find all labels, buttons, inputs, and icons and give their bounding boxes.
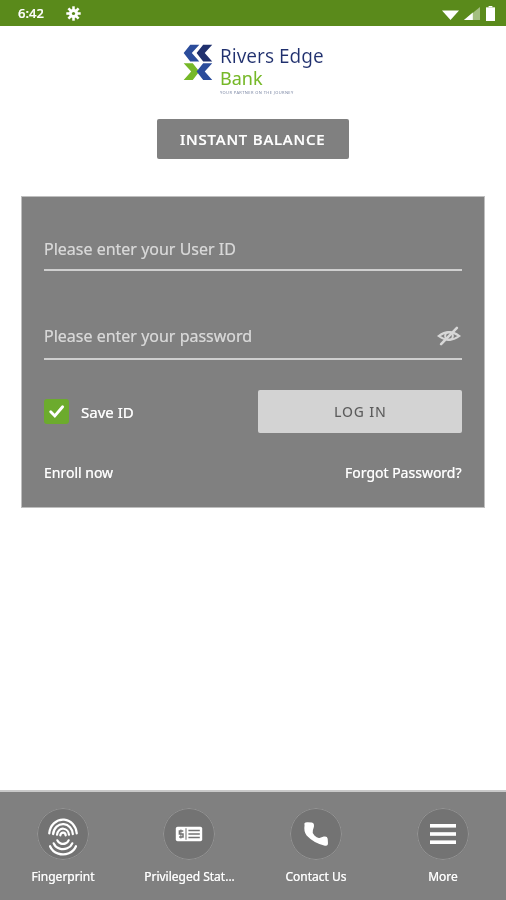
staticText: Fingerprint: [31, 868, 95, 884]
staticText: Please enter your password: [44, 325, 253, 347]
staticText: Privileged Stat...: [144, 868, 235, 884]
button[interactable]: Save ID: [44, 399, 134, 424]
button[interactable]: Please enter your User ID: [44, 238, 462, 271]
button[interactable]: Fingerprint: [0, 802, 126, 890]
staticText: Rivers Edge: [220, 43, 324, 69]
staticText: 6:42: [18, 4, 44, 22]
button[interactable]: Privileged Stat...: [126, 802, 252, 890]
staticText: Forgot Password?: [345, 463, 462, 482]
button[interactable]: Please enter your password: [44, 323, 462, 360]
staticText: Please enter your User ID: [44, 238, 236, 260]
staticText: INSTANT BALANCE: [180, 129, 326, 149]
staticText: Save ID: [81, 402, 134, 422]
staticText: Contact Us: [285, 868, 347, 884]
button[interactable]: LOG IN: [258, 390, 462, 433]
staticText: More: [428, 868, 458, 884]
button[interactable]: Enroll now: [44, 463, 114, 482]
button[interactable]: Show password: [436, 323, 462, 349]
staticText: Bank: [220, 66, 263, 91]
staticText: Enroll now: [44, 463, 114, 482]
staticText: YOUR PARTNER ON THE JOURNEY: [220, 90, 294, 95]
button[interactable]: INSTANT BALANCE: [157, 119, 349, 159]
button[interactable]: Forgot Password?: [345, 463, 462, 482]
button[interactable]: More: [379, 802, 506, 890]
button[interactable]: Contact Us: [252, 802, 379, 890]
staticText: LOG IN: [334, 402, 387, 421]
